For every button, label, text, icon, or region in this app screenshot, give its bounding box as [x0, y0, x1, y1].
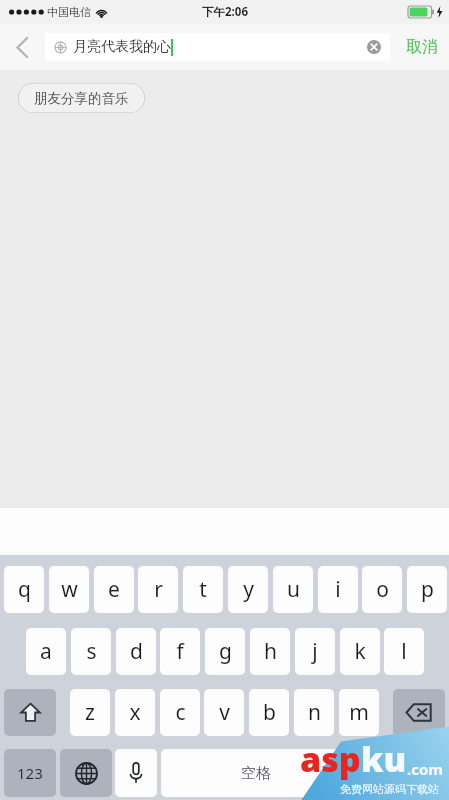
button[interactable]: i [318, 566, 358, 613]
staticText: 免费网站源码下载站 [340, 782, 439, 796]
button[interactable]: g [205, 628, 245, 675]
staticText: ku [361, 736, 407, 782]
staticText: s [86, 637, 97, 666]
staticText: 月亮代表我的心 [73, 38, 171, 56]
button[interactable]: o [362, 566, 402, 613]
staticText: u [287, 575, 300, 604]
staticText: .com [407, 759, 443, 779]
button[interactable]: a [26, 628, 66, 675]
staticText: o [376, 575, 389, 604]
staticText: z [85, 698, 95, 727]
button[interactable]: c [160, 689, 200, 736]
button[interactable]: r [138, 566, 178, 613]
staticText: l [401, 637, 407, 666]
staticText: n [308, 698, 321, 727]
staticText: v [219, 698, 230, 727]
staticText: q [18, 575, 31, 604]
button[interactable]: 123 [4, 749, 56, 797]
staticText: 中国电信 [47, 5, 91, 19]
button[interactable]: j [295, 628, 335, 675]
staticText: 下午2:06 [202, 4, 248, 20]
button[interactable]: Shift [4, 689, 56, 736]
button[interactable]: Backspace [393, 689, 445, 736]
staticText: p [421, 575, 434, 604]
staticText: b [263, 698, 276, 727]
button[interactable]: u [273, 566, 313, 613]
button[interactable]: 空格 [161, 749, 445, 797]
button[interactable]: n [294, 689, 334, 736]
button[interactable]: f [160, 628, 200, 675]
button[interactable]: Back [0, 25, 44, 69]
staticText: t [199, 575, 207, 604]
button[interactable]: s [71, 628, 111, 675]
button[interactable]: x [115, 689, 155, 736]
button[interactable]: Clear text [360, 33, 388, 61]
staticText: 123 [17, 763, 43, 783]
button[interactable]: Voice input [115, 749, 157, 797]
staticText: g [219, 637, 232, 666]
button[interactable]: Change keyboard [60, 749, 112, 797]
staticText: w [61, 575, 78, 604]
staticText: e [108, 575, 120, 604]
staticText: f [176, 637, 184, 666]
button[interactable]: q [4, 566, 44, 613]
staticText: asp [300, 736, 361, 782]
button[interactable]: 取消 [394, 24, 449, 70]
staticText: x [129, 698, 141, 727]
button[interactable]: y [228, 566, 268, 613]
staticText: 取消 [406, 37, 438, 57]
button[interactable]: p [407, 566, 447, 613]
button[interactable]: h [250, 628, 290, 675]
button[interactable]: d [116, 628, 156, 675]
button[interactable]: k [340, 628, 380, 675]
staticText: m [349, 698, 369, 727]
button[interactable]: b [249, 689, 289, 736]
staticText: c [175, 698, 186, 727]
button[interactable]: t [183, 566, 223, 613]
staticText: 朋友分享的音乐 [34, 90, 129, 107]
button[interactable]: l [384, 628, 424, 675]
button[interactable]: m [339, 689, 379, 736]
button[interactable]: e [94, 566, 134, 613]
staticText: r [154, 575, 163, 604]
staticText: a [40, 637, 52, 666]
button[interactable]: w [49, 566, 89, 613]
staticText: k [354, 637, 366, 666]
staticText: h [264, 637, 277, 666]
staticText: i [335, 575, 341, 604]
button[interactable]: v [204, 689, 244, 736]
button[interactable]: z [70, 689, 110, 736]
button[interactable]: 月亮代表我的心 [45, 33, 390, 61]
staticText: y [243, 575, 254, 604]
staticText: 空格 [241, 764, 271, 783]
staticText: j [312, 637, 318, 666]
staticText: d [130, 637, 143, 666]
button[interactable]: 朋友分享的音乐 [18, 83, 145, 113]
